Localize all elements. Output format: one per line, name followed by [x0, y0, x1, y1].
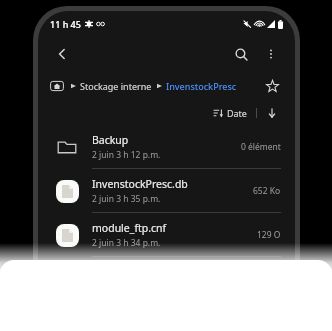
button[interactable]: Date — [210, 105, 250, 121]
staticText: InvenstockPresc.db — [92, 177, 188, 191]
staticText: Backup — [92, 133, 129, 147]
button[interactable]: Search — [227, 40, 255, 68]
button[interactable]: Sort descending — [263, 104, 281, 122]
staticText: InvenstockPresc — [166, 80, 237, 92]
staticText: 2 juin 3 h 12 p.m. — [92, 149, 161, 161]
button[interactable]: Backup — [38, 125, 295, 169]
staticText: 11 h 45 — [50, 18, 81, 30]
staticText: 129 O — [257, 229, 281, 241]
staticText: 652 Ko — [253, 185, 281, 197]
staticText: Date — [227, 107, 247, 119]
button[interactable]: Back — [48, 40, 76, 68]
staticText: 0 élément — [241, 141, 281, 153]
button[interactable]: Add to favourites — [261, 75, 283, 97]
button[interactable]: Stockage interne — [38, 71, 295, 101]
staticText: Stockage interne — [80, 80, 152, 92]
staticText: module_ftp.cnf — [92, 221, 167, 235]
button[interactable]: InvenstockPresc.db — [38, 169, 295, 213]
staticText: 2 juin 3 h 35 p.m. — [92, 193, 161, 205]
staticText: 2 juin 3 h 34 p.m. — [92, 237, 161, 249]
button[interactable]: module_ftp.cnf — [38, 213, 295, 257]
button[interactable]: More options — [257, 40, 285, 68]
